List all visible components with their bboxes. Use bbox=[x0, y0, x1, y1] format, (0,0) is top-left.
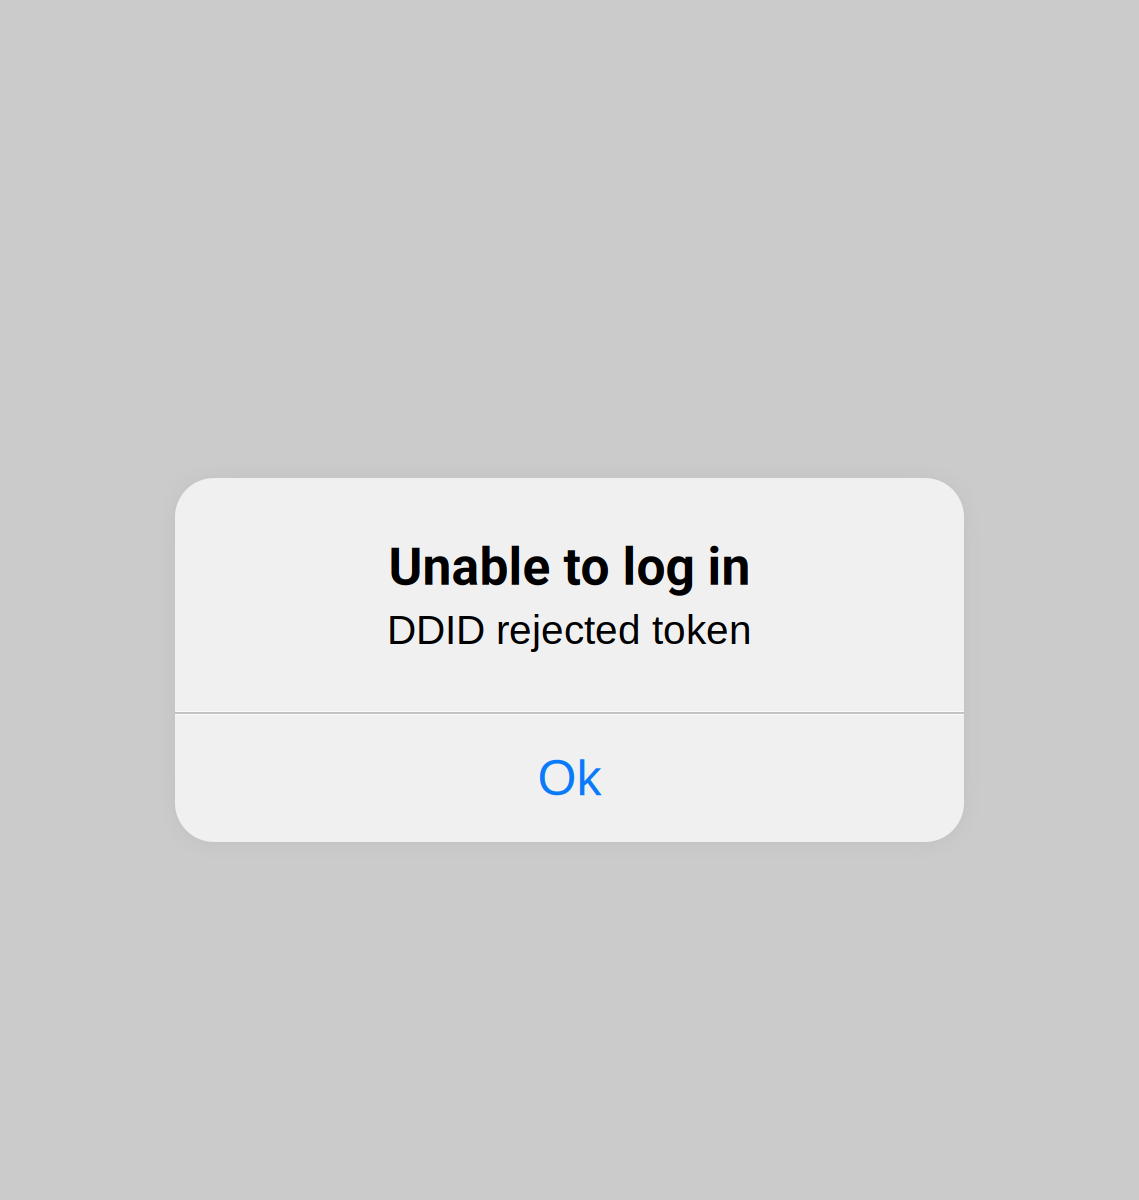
staticText: DDID rejected token bbox=[387, 607, 752, 653]
button[interactable]: Ok bbox=[175, 715, 964, 842]
staticText: Ok bbox=[537, 750, 601, 806]
staticText: Unable to log in bbox=[388, 537, 750, 597]
